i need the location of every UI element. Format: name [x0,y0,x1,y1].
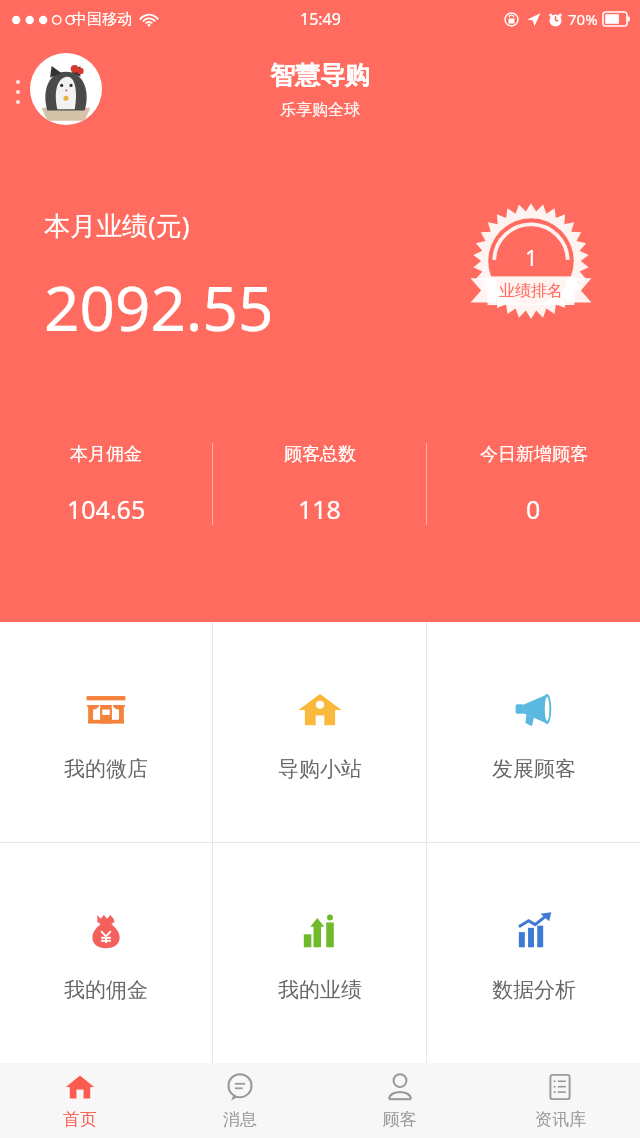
staticText: 中国移动 [72,10,132,29]
staticText: 资讯库 [535,1109,586,1130]
button[interactable]: 首页 [0,1063,160,1138]
button[interactable]: Profile avatar [30,53,102,125]
button[interactable]: 顾客 [320,1063,480,1138]
button[interactable]: Performance ranking badge [468,205,594,327]
button[interactable]: 我的微店 [0,622,212,842]
staticText: 数据分析 [492,977,576,1003]
button[interactable]: 导购小站 [213,622,426,842]
staticText: 我的佣金 [64,977,148,1003]
button[interactable]: 今日新增顾客 [427,429,640,539]
staticText: 发展顾客 [492,756,576,782]
button[interactable]: 数据分析 [427,843,640,1063]
staticText: 顾客总数 [284,443,356,466]
staticText: 首页 [63,1109,97,1130]
staticText: 118 [298,492,341,526]
staticText: 顾客 [383,1109,417,1130]
staticText: 70% [568,9,598,29]
button[interactable]: 发展顾客 [427,622,640,842]
button[interactable]: 本月佣金 [0,429,212,539]
button[interactable]: 我的佣金 [0,843,212,1063]
staticText: 导购小站 [278,756,362,782]
button[interactable]: 我的业绩 [213,843,426,1063]
staticText: 智慧导购 [270,60,370,91]
button[interactable]: 消息 [160,1063,320,1138]
button[interactable]: 资讯库 [480,1063,640,1138]
staticText: 业绩排名 [499,281,563,301]
staticText: 104.65 [67,492,146,526]
staticText: 15:49 [300,8,341,30]
button[interactable]: 顾客总数 [213,429,426,539]
staticText: 本月业绩(元) [44,207,190,243]
staticText: 1 [525,242,538,272]
staticText: 今日新增顾客 [480,443,588,466]
staticText: 我的业绩 [278,977,362,1003]
button[interactable]: More options [6,68,30,116]
staticText: 消息 [223,1109,257,1130]
staticText: 我的微店 [64,756,148,782]
staticText: 2092.55 [44,265,274,349]
staticText: 乐享购全球 [280,100,360,120]
staticText: 0 [526,492,541,526]
staticText: 本月佣金 [70,443,142,466]
